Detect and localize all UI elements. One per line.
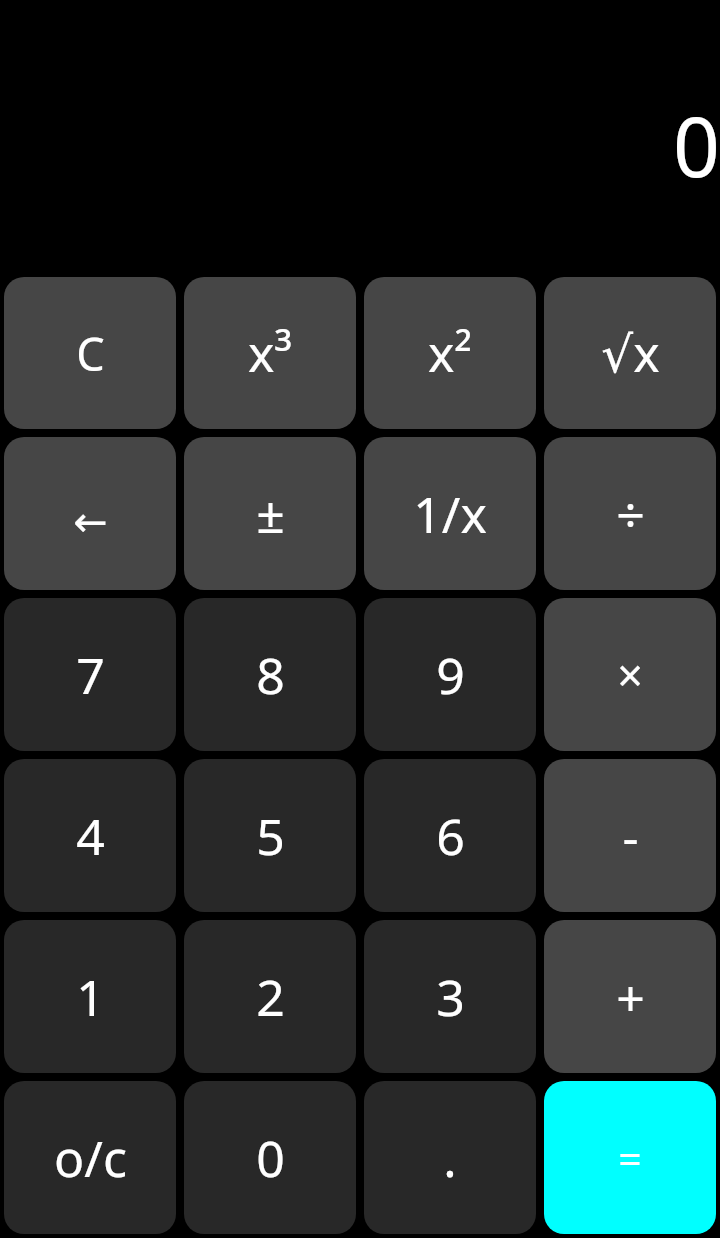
button[interactable]: × — [544, 598, 716, 751]
button[interactable]: 7 — [4, 598, 176, 751]
staticText: × — [617, 644, 643, 705]
staticText: x² — [428, 319, 472, 387]
button[interactable]: ← — [4, 437, 176, 590]
button[interactable]: 2 — [184, 920, 356, 1073]
staticText: 9 — [436, 641, 465, 709]
button[interactable]: - — [544, 759, 716, 912]
button[interactable]: = — [544, 1081, 716, 1234]
staticText: = — [618, 1130, 642, 1186]
button[interactable]: x³ — [184, 277, 356, 429]
staticText: . — [443, 1124, 457, 1192]
button[interactable]: 9 — [364, 598, 536, 751]
button[interactable]: 6 — [364, 759, 536, 912]
button[interactable]: + — [544, 920, 716, 1073]
staticText: + — [616, 963, 645, 1031]
staticText: 5 — [256, 802, 285, 870]
staticText: 0 — [673, 89, 720, 201]
button[interactable]: C — [4, 277, 176, 429]
button[interactable]: 4 — [4, 759, 176, 912]
staticText: ÷ — [616, 480, 645, 548]
staticText: √x — [601, 319, 660, 387]
button[interactable]: ÷ — [544, 437, 716, 590]
staticText: 1 — [76, 963, 105, 1031]
button[interactable]: √x — [544, 277, 716, 429]
staticText: 4 — [76, 802, 105, 870]
staticText: ± — [256, 480, 285, 548]
staticText: 1/x — [413, 480, 487, 548]
staticText: C — [76, 323, 105, 384]
button[interactable]: o/c — [4, 1081, 176, 1234]
staticText: o/c — [54, 1124, 127, 1192]
staticText: 2 — [256, 963, 285, 1031]
staticText: ← — [73, 498, 108, 546]
staticText: 8 — [256, 641, 285, 709]
staticText: x³ — [248, 319, 292, 387]
staticText: 3 — [436, 963, 465, 1031]
button[interactable]: 0 — [184, 1081, 356, 1234]
button[interactable]: 5 — [184, 759, 356, 912]
button[interactable]: 1/x — [364, 437, 536, 590]
button[interactable]: 3 — [364, 920, 536, 1073]
button[interactable]: x² — [364, 277, 536, 429]
button[interactable]: 8 — [184, 598, 356, 751]
button[interactable]: 1 — [4, 920, 176, 1073]
staticText: 0 — [256, 1124, 285, 1192]
staticText: - — [622, 802, 639, 870]
staticText: 6 — [436, 802, 465, 870]
staticText: 7 — [76, 641, 105, 709]
button[interactable]: ± — [184, 437, 356, 590]
button[interactable]: . — [364, 1081, 536, 1234]
